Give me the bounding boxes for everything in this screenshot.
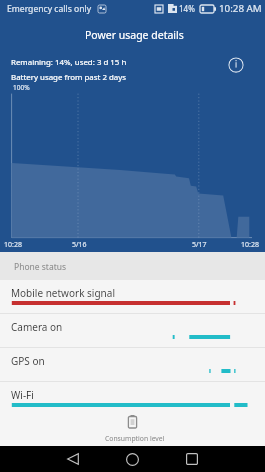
button[interactable]: Information (228, 57, 244, 73)
staticText: GPS on (11, 354, 45, 368)
staticText: Remaining: 14%, used: 3 d 15 h (11, 57, 127, 68)
staticText: Battery usage from past 2 days (11, 72, 127, 83)
staticText: 5/17 (192, 240, 207, 250)
button[interactable]: Mobile network signal (0, 280, 265, 314)
button[interactable]: Wi-Fi (0, 382, 265, 410)
button[interactable]: GPS on (0, 348, 265, 382)
button[interactable]: Recents (176, 446, 208, 472)
staticText: 10:28 AM (219, 2, 262, 15)
button[interactable]: Consumption level (0, 409, 265, 446)
staticText: 10:28 (4, 240, 22, 250)
staticText: Mobile network signal (11, 286, 115, 300)
staticText: Consumption level (105, 434, 165, 443)
staticText: Emergency calls only (7, 3, 92, 15)
staticText: Camera on (11, 320, 63, 334)
button[interactable]: Camera on (0, 314, 265, 348)
staticText: 5/16 (72, 240, 87, 250)
staticText: Wi-Fi (11, 388, 34, 402)
staticText: 14% (179, 3, 195, 14)
button[interactable]: Back (57, 446, 89, 472)
staticText: 100% (13, 83, 30, 92)
staticText: 10:28 (241, 240, 259, 250)
staticText: Phone status (14, 261, 67, 273)
staticText: Power usage details (85, 28, 184, 42)
button[interactable]: Home (116, 446, 148, 472)
